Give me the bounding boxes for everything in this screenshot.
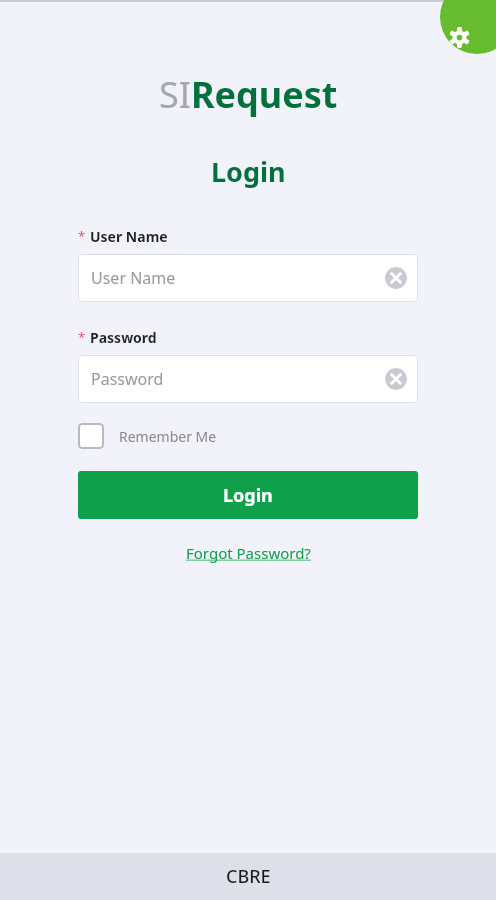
staticText: * — [78, 227, 86, 245]
button[interactable]: Remember Me — [78, 423, 217, 449]
staticText: * — [78, 328, 86, 346]
staticText: Remember Me — [119, 427, 217, 446]
button[interactable]: User Name — [78, 254, 418, 302]
button[interactable]: Clear User Name — [385, 267, 407, 289]
staticText: CBRE — [226, 864, 271, 889]
staticText: Password — [91, 368, 164, 390]
staticText: User Name — [90, 227, 168, 246]
staticText: User Name — [91, 267, 176, 289]
button[interactable]: Forgot Password? — [186, 543, 311, 563]
staticText: Login — [211, 153, 286, 190]
staticText: Password — [90, 328, 157, 347]
button[interactable]: Password — [78, 355, 418, 403]
button[interactable]: Settings — [440, 0, 496, 54]
button[interactable]: Login — [78, 471, 418, 519]
staticText: Forgot Password? — [186, 543, 311, 563]
button[interactable]: Clear Password — [385, 368, 407, 390]
staticText: Login — [223, 483, 273, 508]
staticText: SIRequest — [159, 70, 338, 119]
